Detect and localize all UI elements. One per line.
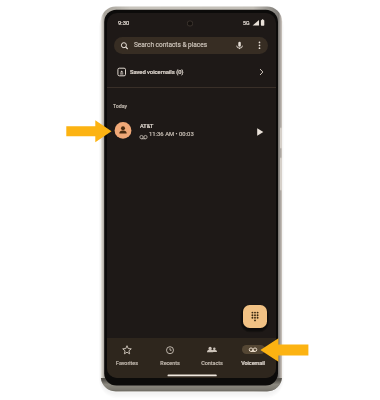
button[interactable]: Open dialpad xyxy=(243,305,267,328)
staticText: 11:36 AM • 00:03 xyxy=(149,131,194,138)
button[interactable]: Contacts xyxy=(191,338,233,370)
button[interactable]: Favorites xyxy=(107,338,148,370)
button[interactable]: Voice search xyxy=(234,40,245,51)
staticText: 9:30 xyxy=(118,20,130,27)
button[interactable]: Play voicemail xyxy=(252,122,268,138)
staticText: 5G xyxy=(243,20,250,26)
staticText: Voicemail xyxy=(232,360,274,366)
button[interactable]: Voicemail xyxy=(232,338,274,370)
button[interactable]: Recents xyxy=(149,338,191,370)
staticText: Search contacts & places xyxy=(134,41,208,49)
staticText: Favorites xyxy=(107,360,148,366)
staticText: AT&T xyxy=(140,123,154,130)
button[interactable]: Search contacts & places xyxy=(114,37,268,54)
staticText: Recents xyxy=(149,360,191,366)
staticText: Saved voicemails (0) xyxy=(130,69,184,76)
button[interactable]: Saved voicemails (0) xyxy=(107,61,276,83)
staticText: Contacts xyxy=(191,360,233,366)
button[interactable]: Play voicemail xyxy=(107,115,276,144)
staticText: Today xyxy=(113,103,127,109)
button[interactable]: More options xyxy=(254,40,265,51)
